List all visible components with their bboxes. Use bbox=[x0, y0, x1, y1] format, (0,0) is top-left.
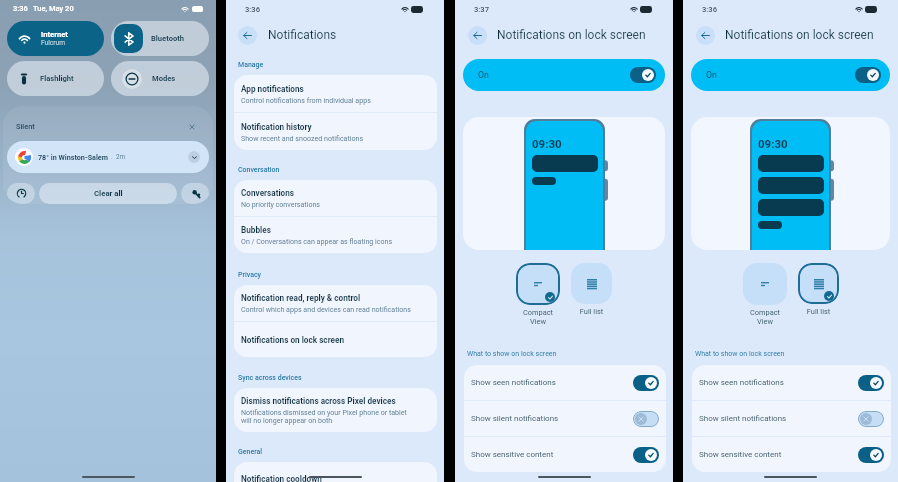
button[interactable]: 78° in Winston-Salem bbox=[7, 141, 209, 173]
staticText: 3:36 bbox=[245, 5, 260, 14]
staticText: 3:36 bbox=[13, 4, 28, 13]
staticText: Bluetooth bbox=[151, 34, 185, 43]
staticText: 78° in Winston-Salem bbox=[38, 153, 108, 161]
button[interactable]: Modes bbox=[111, 61, 209, 96]
button[interactable]: Show sensitive content bbox=[464, 437, 666, 472]
button[interactable]: Bubbles bbox=[234, 217, 437, 253]
button[interactable]: Full list bbox=[798, 263, 839, 304]
staticText: Modes bbox=[152, 74, 176, 83]
staticText: Full list bbox=[798, 307, 839, 316]
button[interactable]: Off bbox=[858, 411, 884, 427]
staticText: 3:37 bbox=[474, 5, 489, 14]
staticText: Fulcrum bbox=[41, 39, 65, 47]
staticText: Control which apps and devices can read … bbox=[241, 305, 411, 313]
staticText: Tue, May 20 bbox=[33, 4, 74, 13]
button[interactable]: Bluetooth bbox=[111, 21, 209, 56]
button[interactable]: Dismiss notifications across Pixel devic… bbox=[234, 388, 437, 432]
button[interactable]: Show silent notifications bbox=[692, 401, 891, 436]
button[interactable]: On bbox=[633, 447, 659, 463]
button[interactable]: App notifications bbox=[234, 75, 437, 112]
button[interactable]: Compact View bbox=[743, 263, 787, 305]
button[interactable]: Notification read, reply & control bbox=[234, 285, 437, 321]
button[interactable]: Back bbox=[696, 26, 715, 45]
button[interactable]: On bbox=[633, 375, 659, 391]
staticText: Bubbles bbox=[241, 225, 271, 235]
button[interactable]: On bbox=[463, 59, 665, 91]
staticText: Compact View bbox=[743, 308, 787, 326]
staticText: Internet bbox=[41, 30, 68, 39]
button[interactable]: Off bbox=[633, 411, 659, 427]
staticText: What to show on lock screen bbox=[695, 350, 785, 358]
button[interactable]: Clear all bbox=[39, 183, 177, 204]
staticText: Notification read, reply & control bbox=[241, 293, 361, 303]
button[interactable]: Notification history bbox=[234, 113, 437, 150]
button[interactable]: Internet bbox=[7, 21, 104, 56]
button[interactable]: Flashlight bbox=[7, 61, 104, 96]
staticText: Show seen notifications bbox=[471, 378, 556, 387]
button[interactable]: Back bbox=[468, 26, 487, 45]
staticText: What to show on lock screen bbox=[467, 350, 557, 358]
staticText: · bbox=[108, 154, 116, 161]
button[interactable]: Show seen notifications bbox=[692, 365, 891, 400]
staticText: Show recent and snoozed notifications bbox=[241, 134, 364, 142]
staticText: Privacy bbox=[238, 271, 262, 279]
staticText: Notifications on lock screen bbox=[497, 28, 646, 42]
staticText: Notifications on lock screen bbox=[241, 335, 344, 345]
staticText: Dismiss notifications across Pixel devic… bbox=[241, 396, 396, 406]
button[interactable]: On bbox=[855, 67, 881, 83]
button[interactable]: Back bbox=[238, 26, 257, 45]
staticText: Conversations bbox=[241, 188, 295, 198]
button[interactable]: Conversations bbox=[234, 180, 437, 216]
staticText: Sync across devices bbox=[238, 374, 302, 382]
button[interactable]: Show sensitive content bbox=[692, 437, 891, 472]
button[interactable]: Full list bbox=[571, 263, 612, 304]
staticText: General bbox=[238, 448, 263, 456]
button[interactable]: Notifications on lock screen bbox=[234, 322, 437, 357]
staticText: Clear all bbox=[94, 189, 123, 198]
staticText: On / Conversations can appear as floatin… bbox=[241, 237, 393, 245]
button[interactable]: On bbox=[858, 447, 884, 463]
staticText: Notifications dismissed on your Pixel ph… bbox=[241, 408, 407, 425]
button[interactable]: Show seen notifications bbox=[464, 365, 666, 400]
staticText: Compact View bbox=[516, 308, 560, 326]
staticText: 2m bbox=[116, 153, 126, 161]
staticText: Show silent notifications bbox=[699, 414, 787, 423]
staticText: Conversation bbox=[238, 166, 280, 174]
button[interactable]: On bbox=[630, 67, 656, 83]
staticText: 09:30 bbox=[532, 137, 562, 150]
button[interactable]: Notification history bbox=[7, 183, 35, 204]
button[interactable]: Close bbox=[185, 120, 198, 133]
staticText: App notifications bbox=[241, 84, 304, 94]
staticText: On bbox=[706, 70, 717, 80]
staticText: Notification history bbox=[241, 122, 312, 132]
staticText: Show silent notifications bbox=[471, 414, 559, 423]
staticText: No priority conversations bbox=[241, 200, 321, 208]
button[interactable]: Notification settings bbox=[181, 183, 209, 204]
button[interactable]: Notification cooldown bbox=[234, 462, 437, 482]
staticText: 09:30 bbox=[758, 137, 788, 150]
staticText: Notifications bbox=[268, 28, 337, 42]
button[interactable]: On bbox=[858, 375, 884, 391]
button[interactable]: On bbox=[691, 59, 890, 91]
staticText: Show sensitive content bbox=[699, 450, 782, 459]
staticText: Flashlight bbox=[40, 74, 74, 83]
staticText: Control notifications from individual ap… bbox=[241, 96, 371, 104]
staticText: Silent bbox=[16, 122, 35, 131]
staticText: On bbox=[478, 70, 489, 80]
button[interactable]: Compact View bbox=[516, 263, 560, 305]
staticText: Show seen notifications bbox=[699, 378, 784, 387]
button[interactable]: Show silent notifications bbox=[464, 401, 666, 436]
staticText: Full list bbox=[571, 307, 612, 316]
staticText: 3:36 bbox=[702, 5, 717, 14]
staticText: Notification cooldown bbox=[241, 474, 322, 482]
staticText: Show sensitive content bbox=[471, 450, 554, 459]
staticText: Manage bbox=[238, 61, 264, 69]
staticText: Notifications on lock screen bbox=[725, 28, 874, 42]
